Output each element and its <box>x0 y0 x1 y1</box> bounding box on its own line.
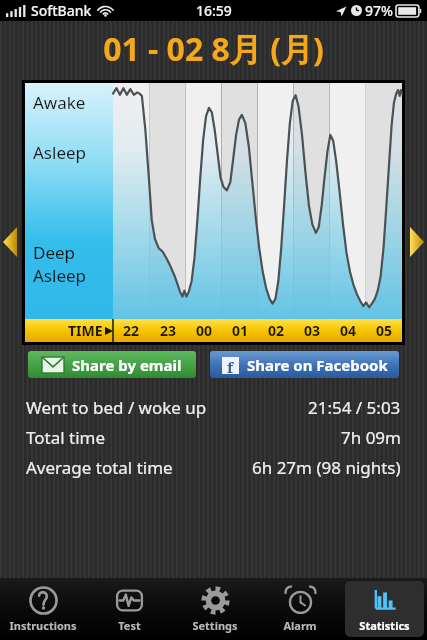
staticText: 01 <box>232 321 249 340</box>
button[interactable]: Test <box>89 581 169 637</box>
button[interactable]: Next night <box>407 222 427 262</box>
button[interactable]: Previous night <box>0 222 20 262</box>
staticText: TIME <box>68 321 103 340</box>
button[interactable]: Alarm <box>260 581 339 637</box>
button[interactable]: Share by email <box>28 351 196 378</box>
button[interactable]: Settings <box>175 581 254 637</box>
staticText: Test <box>118 618 141 633</box>
staticText: 6h 27m (98 nights) <box>252 456 401 479</box>
staticText: Share on Facebook <box>247 355 388 375</box>
staticText: 16:59 <box>196 1 232 20</box>
staticText: Alarm <box>283 618 317 633</box>
staticText: Asleep <box>33 264 87 287</box>
staticText: 05 <box>376 321 393 340</box>
staticText: 04 <box>340 321 357 340</box>
staticText: Share by email <box>72 355 182 375</box>
staticText: 97% <box>365 1 393 20</box>
button[interactable]: Instructions <box>3 581 83 637</box>
staticText: Settings <box>192 618 238 633</box>
staticText: 7h 09m <box>341 426 401 449</box>
staticText: Went to bed / woke up <box>26 396 207 419</box>
staticText: Average total time <box>26 456 173 479</box>
staticText: 00 <box>196 321 213 340</box>
staticText: Statistics <box>359 618 410 633</box>
button[interactable]: Awake <box>25 83 402 342</box>
staticText: Deep <box>33 241 76 264</box>
button[interactable]: f <box>210 351 399 378</box>
staticText: Asleep <box>33 141 87 164</box>
staticText: 02 <box>268 321 285 340</box>
staticText: Awake <box>33 91 86 114</box>
staticText: SoftBank <box>31 1 92 20</box>
staticText: 03 <box>304 321 321 340</box>
staticText: Total time <box>26 426 106 449</box>
staticText: Instructions <box>9 618 77 633</box>
staticText: 23 <box>160 321 177 340</box>
button[interactable]: Statistics <box>345 581 424 637</box>
staticText: f <box>227 357 234 374</box>
staticText: 22 <box>123 321 140 340</box>
staticText: 01 - 02 8月 (月) <box>103 27 324 71</box>
staticText: 21:54 / 5:03 <box>308 396 401 419</box>
